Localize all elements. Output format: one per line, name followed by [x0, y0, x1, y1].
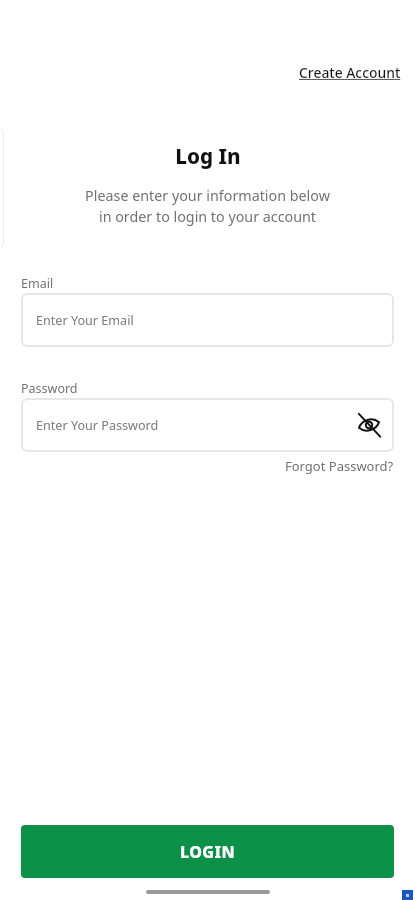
staticText: Email [21, 275, 54, 289]
button[interactable]: Forgot Password? [285, 457, 394, 475]
staticText: Enter Your Password [36, 417, 159, 434]
button[interactable]: Create Account [299, 63, 401, 82]
button[interactable]: Enter Your Password [21, 398, 394, 452]
staticText: Password [21, 380, 78, 394]
staticText: Log In [175, 142, 241, 170]
staticText: LOGIN [180, 841, 235, 863]
staticText: Enter Your Email [36, 312, 134, 329]
button[interactable]: LOGIN [21, 825, 394, 878]
staticText: Forgot Password? [285, 457, 394, 475]
staticText: Please enter your information below in o… [0, 186, 415, 227]
staticText: Create Account [299, 63, 401, 82]
button[interactable]: Show password [352, 408, 386, 442]
button[interactable]: Enter Your Email [21, 293, 394, 347]
